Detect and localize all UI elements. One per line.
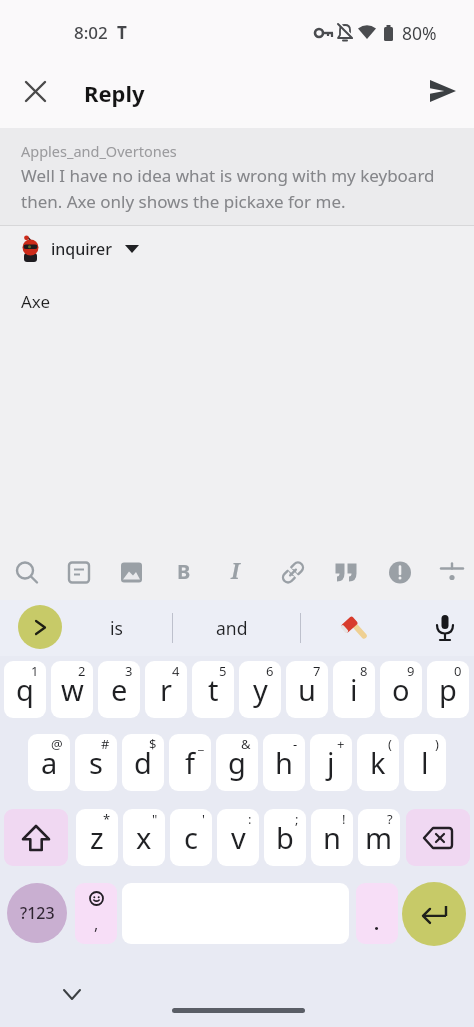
staticText: ( (388, 735, 392, 753)
button[interactable] (18, 605, 62, 649)
staticText: 2 (78, 662, 86, 680)
button[interactable]: c (170, 809, 212, 866)
staticText: * (103, 810, 111, 828)
button[interactable]: r (145, 661, 187, 718)
staticText: Axe (21, 290, 51, 313)
staticText: q (16, 670, 34, 709)
staticText: h (275, 743, 293, 782)
button[interactable]: o (380, 661, 422, 718)
button[interactable] (406, 809, 470, 866)
staticText: ) (435, 735, 439, 753)
staticText: + (337, 735, 345, 753)
staticText: # (101, 735, 110, 753)
staticText: & (241, 735, 251, 753)
staticText: o (392, 670, 410, 709)
button[interactable]: x (123, 809, 165, 866)
staticText: d (134, 743, 152, 782)
button[interactable]: is (66, 600, 166, 656)
staticText: 0 (454, 662, 462, 680)
button[interactable]: e (98, 661, 140, 718)
staticText: Reply (84, 78, 145, 108)
staticText: : (248, 810, 252, 828)
staticText: x (136, 818, 152, 857)
button[interactable]: b (264, 809, 306, 866)
button[interactable]: u (286, 661, 328, 718)
staticText: r (160, 670, 172, 709)
button[interactable] (4, 809, 68, 866)
staticText: ? (387, 810, 393, 828)
button[interactable]: . (356, 883, 398, 944)
button[interactable]: d (122, 734, 164, 791)
button[interactable]: w (51, 661, 93, 718)
staticText: a (41, 743, 58, 782)
button[interactable] (318, 600, 394, 656)
staticText: is (110, 616, 123, 640)
staticText: j (327, 743, 335, 782)
staticText: y (253, 670, 268, 709)
button[interactable]: n (311, 809, 353, 866)
staticText: " (152, 810, 158, 828)
staticText: p (439, 670, 457, 709)
staticText: 4 (172, 662, 180, 680)
staticText: 9 (407, 662, 415, 680)
staticText: and (216, 616, 248, 640)
button[interactable]: s (75, 734, 117, 791)
button[interactable] (402, 882, 466, 946)
button[interactable]: g (216, 734, 258, 791)
button[interactable]: ?123 (7, 883, 67, 943)
staticText: 80% (402, 21, 437, 45)
staticText: T (117, 21, 127, 44)
button[interactable]: i (333, 661, 375, 718)
staticText: 5 (219, 662, 227, 680)
staticText: 3 (125, 662, 133, 680)
button[interactable]: , (75, 883, 117, 944)
staticText: , (94, 913, 99, 935)
button[interactable] (420, 600, 470, 656)
staticText: Well I have no idea what is wrong with m… (21, 164, 435, 213)
button[interactable]: t (192, 661, 234, 718)
staticText: I (231, 557, 240, 586)
staticText: i (350, 670, 358, 709)
button[interactable] (424, 72, 462, 110)
staticText: v (231, 818, 246, 857)
staticText: 8 (360, 662, 368, 680)
button[interactable]: h (263, 734, 305, 791)
button[interactable] (17, 73, 53, 109)
staticText: w (61, 670, 84, 709)
staticText: l (421, 743, 429, 782)
staticText: . (374, 911, 380, 936)
button[interactable]: f (169, 734, 211, 791)
staticText: - (293, 735, 298, 753)
button[interactable]: m (358, 809, 400, 866)
staticText: 1 (31, 662, 39, 680)
staticText: 6 (266, 662, 274, 680)
staticText: 8:02 (74, 21, 108, 44)
button[interactable]: v (217, 809, 259, 866)
staticText: ! (342, 810, 346, 828)
staticText: ?123 (20, 902, 55, 924)
button[interactable]: k (357, 734, 399, 791)
staticText: Apples_and_Overtones (21, 141, 177, 161)
button[interactable]: y (239, 661, 281, 718)
staticText: inquirer (51, 238, 113, 260)
button[interactable]: q (4, 661, 46, 718)
button[interactable]: j (310, 734, 352, 791)
staticText: m (365, 818, 393, 857)
staticText: e (111, 670, 128, 709)
button[interactable]: inquirer (16, 234, 139, 264)
staticText: @ (51, 735, 63, 753)
button[interactable]: z (76, 809, 118, 866)
staticText: n (323, 818, 341, 857)
staticText: 7 (313, 662, 321, 680)
staticText: z (90, 818, 104, 857)
button[interactable]: l (404, 734, 446, 791)
staticText: t (208, 670, 219, 709)
staticText: ' (202, 810, 205, 828)
staticText: b (276, 818, 294, 857)
staticText: ; (295, 810, 299, 828)
button[interactable]: p (427, 661, 469, 718)
button[interactable]: a (28, 734, 70, 791)
button[interactable]: and (186, 600, 278, 656)
staticText: $ (149, 735, 157, 753)
